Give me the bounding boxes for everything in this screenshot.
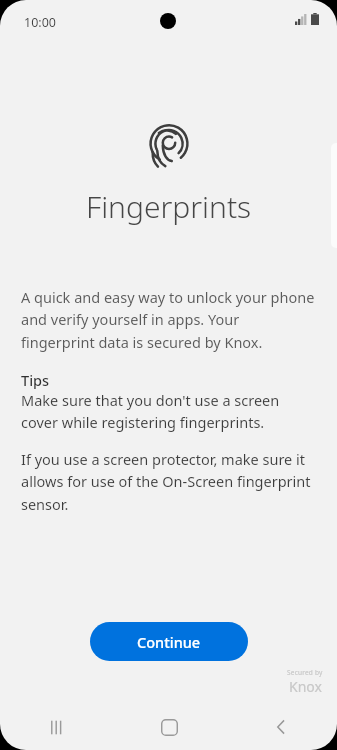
staticText: Fingerprints — [86, 186, 252, 227]
staticText: Tips — [21, 370, 50, 390]
button[interactable]: Back — [225, 704, 337, 750]
staticText: Secured by — [287, 668, 323, 677]
staticText: Knox — [289, 677, 322, 696]
staticText: A quick and easy way to unlock your phon… — [21, 287, 316, 352]
other: Fingerprint — [146, 122, 192, 168]
button[interactable]: Recents — [0, 704, 113, 750]
staticText: If you use a screen protector, make sure… — [21, 449, 316, 514]
staticText: 10:00 — [24, 14, 56, 31]
staticText: Continue — [137, 632, 201, 652]
staticText: Make sure that you don't use a screen co… — [21, 390, 316, 432]
button[interactable]: Home — [113, 704, 225, 750]
button[interactable]: Continue — [90, 622, 248, 661]
